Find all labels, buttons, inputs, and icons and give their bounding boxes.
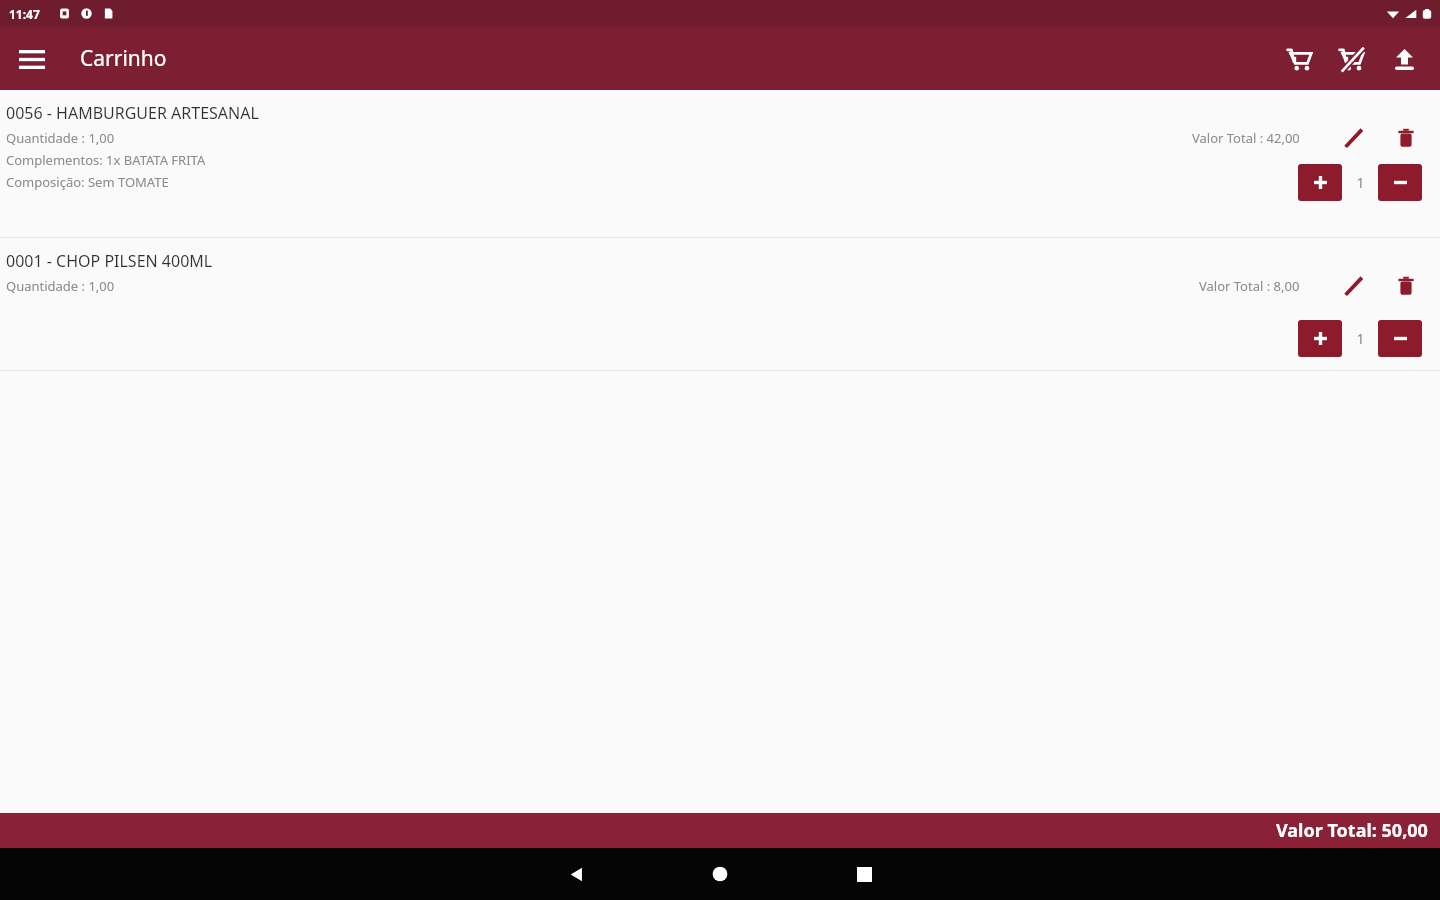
button[interactable]: Diminuir [1378, 320, 1422, 357]
button[interactable]: Esvaziar carrinho [1326, 33, 1378, 85]
button[interactable]: 0056 - HAMBURGUER ARTESANAL [0, 90, 1440, 237]
staticText: Quantidade : 1,00 [6, 277, 115, 295]
button[interactable]: Início [672, 848, 768, 900]
button[interactable]: Menu [10, 37, 54, 81]
staticText: Composição: Sem TOMATE [6, 173, 169, 191]
button[interactable]: Carrinho [1274, 33, 1326, 85]
button[interactable]: Enviar pedido [1378, 33, 1430, 85]
staticText: Valor Total : 42,00 [1192, 129, 1300, 147]
staticText: Carrinho [80, 44, 167, 73]
button[interactable]: 0001 - CHOP PILSEN 400ML [0, 238, 1440, 370]
button[interactable]: Remover item [1386, 118, 1426, 158]
staticText: Valor Total: 50,00 [1276, 818, 1428, 843]
staticText: 11:47 [9, 6, 40, 22]
button[interactable]: Aumentar [1298, 164, 1342, 201]
staticText: 0001 - CHOP PILSEN 400ML [6, 250, 213, 272]
staticText: Quantidade : 1,00 [6, 129, 115, 147]
staticText: Valor Total : 8,00 [1199, 277, 1300, 295]
staticText: 1 [1356, 173, 1365, 192]
button[interactable]: Diminuir [1378, 164, 1422, 201]
button[interactable]: Recentes [816, 848, 912, 900]
button[interactable]: Aumentar [1298, 320, 1342, 357]
button[interactable]: Editar item [1334, 266, 1374, 306]
button[interactable]: Remover item [1386, 266, 1426, 306]
staticText: 0056 - HAMBURGUER ARTESANAL [6, 102, 259, 124]
button[interactable]: Editar item [1334, 118, 1374, 158]
staticText: 1 [1356, 329, 1365, 348]
staticText: Complementos: 1x BATATA FRITA [6, 151, 206, 169]
button[interactable]: Voltar [528, 848, 624, 900]
